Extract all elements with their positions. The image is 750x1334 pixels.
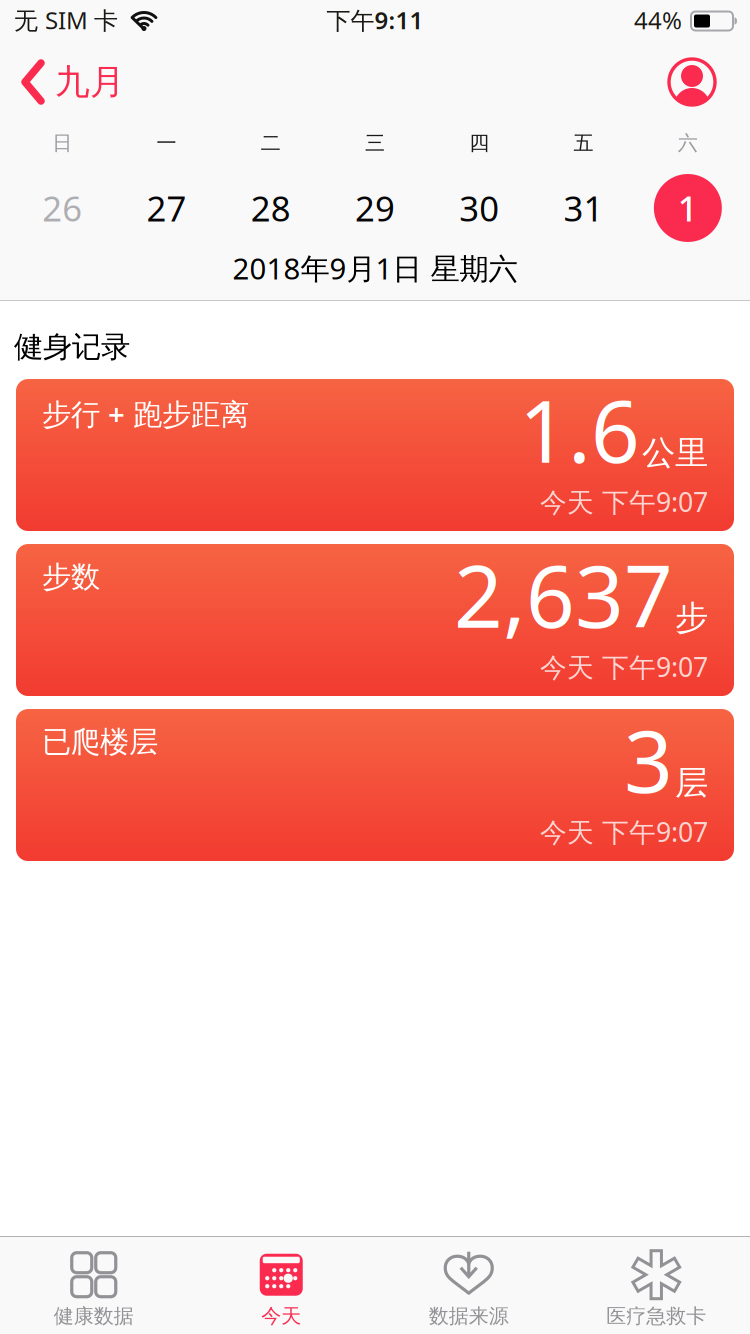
button[interactable]: 九月 bbox=[0, 57, 125, 101]
button[interactable]: 健康数据 bbox=[0, 1243, 187, 1328]
button[interactable]: 步行 + 跑步距离 bbox=[0, 379, 734, 531]
staticText: 今天 下午9:07 bbox=[540, 814, 708, 849]
staticText: 二 bbox=[261, 131, 281, 155]
staticText: 下午9:11 bbox=[326, 4, 423, 36]
staticText: 公里 bbox=[642, 432, 708, 473]
staticText: 28 bbox=[251, 185, 291, 231]
button[interactable]: 26 bbox=[10, 185, 114, 231]
button[interactable]: 28 bbox=[219, 185, 323, 231]
staticText: 已爬楼层 bbox=[42, 724, 158, 760]
staticText: 一 bbox=[156, 131, 176, 155]
staticText: 医疗急救卡 bbox=[606, 1304, 706, 1328]
button[interactable]: 31 bbox=[531, 185, 636, 231]
button[interactable]: 今天 bbox=[187, 1243, 375, 1328]
button[interactable]: 已爬楼层 bbox=[0, 709, 734, 861]
staticText: 2,637 bbox=[454, 538, 673, 651]
staticText: 健身记录 bbox=[14, 329, 130, 365]
button[interactable]: 步数 bbox=[0, 544, 734, 696]
button[interactable] bbox=[668, 55, 750, 103]
staticText: 27 bbox=[146, 185, 186, 231]
staticText: 1 bbox=[678, 185, 698, 231]
staticText: 3 bbox=[624, 703, 673, 816]
staticText: 四 bbox=[469, 131, 489, 155]
staticText: 五 bbox=[574, 131, 594, 155]
staticText: 30 bbox=[459, 185, 499, 231]
staticText: 九月 bbox=[55, 61, 125, 103]
staticText: 1.6 bbox=[519, 373, 640, 486]
button[interactable]: 1 bbox=[636, 174, 740, 242]
staticText: 层 bbox=[675, 762, 708, 803]
staticText: 步 bbox=[675, 597, 708, 638]
staticText: 六 bbox=[678, 131, 698, 155]
staticText: 步数 bbox=[42, 559, 100, 595]
staticText: 31 bbox=[564, 185, 604, 231]
staticText: 今天 下午9:07 bbox=[540, 484, 708, 519]
button[interactable]: 医疗急救卡 bbox=[562, 1243, 750, 1328]
staticText: 三 bbox=[365, 131, 385, 155]
staticText: 今天 bbox=[261, 1304, 301, 1328]
button[interactable]: 29 bbox=[323, 185, 427, 231]
button[interactable]: 27 bbox=[114, 185, 219, 231]
staticText: 日 bbox=[52, 131, 72, 155]
staticText: 数据来源 bbox=[429, 1304, 509, 1328]
staticText: 步行 + 跑步距离 bbox=[42, 394, 249, 433]
button[interactable]: 30 bbox=[427, 185, 531, 231]
button[interactable]: 数据来源 bbox=[375, 1243, 562, 1328]
staticText: 健康数据 bbox=[54, 1304, 134, 1328]
staticText: 无 SIM 卡 bbox=[14, 4, 118, 36]
staticText: 今天 下午9:07 bbox=[540, 649, 708, 684]
staticText: 26 bbox=[42, 185, 82, 231]
staticText: 29 bbox=[355, 185, 395, 231]
staticText: 2018年9月1日 星期六 bbox=[232, 248, 517, 287]
staticText: 44% bbox=[634, 4, 682, 36]
